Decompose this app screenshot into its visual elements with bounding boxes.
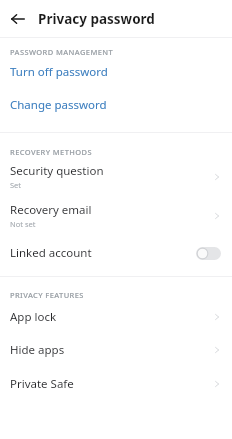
- staticText: Recovery email: [10, 202, 92, 218]
- button[interactable]: Recovery email: [0, 196, 232, 235]
- staticText: App lock: [10, 309, 213, 325]
- staticText: Privacy password: [38, 10, 155, 28]
- button[interactable]: Private Safe: [0, 367, 232, 401]
- button[interactable]: Security question: [0, 157, 232, 196]
- staticText: RECOVERY METHODS: [10, 147, 92, 157]
- staticText: Private Safe: [10, 376, 213, 392]
- staticText: PRIVACY FEATURES: [10, 290, 84, 300]
- staticText: Linked account: [10, 245, 196, 261]
- staticText: Turn off password: [10, 64, 108, 80]
- button[interactable]: Change password: [0, 87, 232, 123]
- button[interactable]: App lock: [0, 300, 232, 333]
- staticText: PASSWORD MANAGEMENT: [10, 47, 114, 57]
- staticText: Change password: [10, 97, 107, 113]
- staticText: Set: [10, 180, 22, 190]
- staticText: Security question: [10, 163, 104, 179]
- button[interactable]: Hide apps: [0, 333, 232, 367]
- staticText: Hide apps: [10, 342, 213, 358]
- button[interactable]: Turn off password: [0, 57, 232, 87]
- button[interactable]: Back: [5, 6, 31, 32]
- button[interactable]: Linked account: [0, 235, 232, 271]
- staticText: Not set: [10, 219, 36, 229]
